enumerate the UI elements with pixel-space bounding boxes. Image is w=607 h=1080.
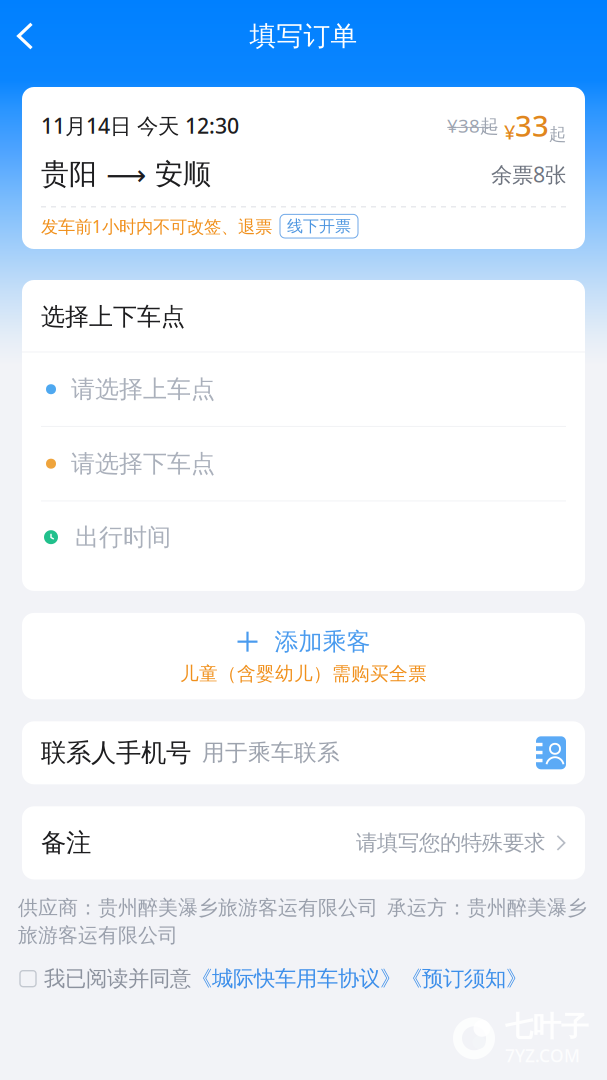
staticText: 出行时间 bbox=[75, 522, 171, 552]
staticText: 儿童（含婴幼儿）需购买全票 bbox=[180, 662, 427, 685]
button[interactable]: 出行时间 bbox=[22, 501, 585, 591]
staticText: 《预订须知》 bbox=[401, 966, 527, 992]
staticText: 选择上下车点 bbox=[41, 302, 185, 331]
staticText: 请选择上车点 bbox=[71, 374, 215, 404]
staticText: 起 bbox=[549, 124, 566, 145]
staticText: 七叶子 bbox=[505, 1010, 589, 1044]
staticText: 33 bbox=[515, 106, 549, 145]
button[interactable]: Agree to terms bbox=[20, 971, 36, 987]
staticText: 承运方：贵州醉美瀑乡 bbox=[387, 895, 587, 920]
staticText: 联系人手机号 bbox=[41, 737, 191, 768]
staticText: 7YZ.COM bbox=[505, 1044, 580, 1067]
staticText: 余票8张 bbox=[491, 160, 566, 188]
button[interactable]: 添加乘客 bbox=[22, 613, 585, 699]
staticText: 我已阅读并同意 bbox=[44, 966, 191, 992]
button[interactable]: 请选择上车点 bbox=[22, 352, 585, 426]
staticText: 备注 bbox=[41, 827, 91, 858]
button[interactable]: 请选择下车点 bbox=[22, 427, 585, 500]
staticText: 11月14日 今天 12:30 bbox=[41, 111, 239, 140]
staticText: ¥38起 bbox=[447, 113, 499, 138]
staticText: 填写订单 bbox=[249, 20, 357, 52]
staticText: 用于乘车联系 bbox=[202, 739, 340, 767]
staticText: 贵阳 ⟶ 安顺 bbox=[41, 157, 211, 191]
button[interactable]: 备注 bbox=[22, 806, 585, 879]
button[interactable]: 《城际快车用车协议》 bbox=[191, 966, 401, 992]
staticText: 供应商：贵州醉美瀑乡旅游客运有限公司 bbox=[18, 895, 378, 920]
staticText: 旅游客运有限公司 bbox=[18, 923, 178, 948]
staticText: 请选择下车点 bbox=[71, 449, 215, 478]
button[interactable]: 《预订须知》 bbox=[401, 966, 527, 992]
staticText: 添加乘客 bbox=[274, 627, 370, 656]
staticText: 《城际快车用车协议》 bbox=[191, 966, 401, 992]
button[interactable]: 联系人手机号 bbox=[22, 721, 585, 784]
staticText: ¥ bbox=[504, 118, 515, 145]
staticText: 请填写您的特殊要求 bbox=[356, 830, 545, 856]
button[interactable]: Back bbox=[0, 0, 74, 72]
staticText: 线下开票 bbox=[287, 216, 351, 236]
staticText: 发车前1小时内不可改签、退票 bbox=[41, 215, 272, 238]
